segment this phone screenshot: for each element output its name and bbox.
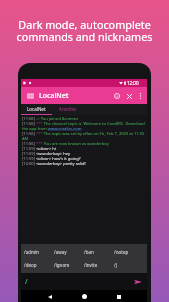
staticText: /ignore xyxy=(54,262,70,268)
staticText: /ban xyxy=(84,249,94,255)
staticText: /away xyxy=(54,249,67,255)
staticText: Anonbis xyxy=(59,106,77,112)
button[interactable]: Recent apps xyxy=(112,290,125,302)
staticText: /admin xyxy=(24,249,40,255)
staticText: Dark mode, autocomplete commands and nic… xyxy=(0,17,169,44)
staticText: /invite xyxy=(84,262,98,268)
button[interactable]: /deop xyxy=(24,258,54,271)
button[interactable]: /notop xyxy=(114,246,144,258)
button[interactable]: Home xyxy=(78,290,91,302)
staticText: LocalNet xyxy=(27,106,46,112)
button[interactable]: /invite xyxy=(84,258,114,271)
staticText: [11:56] -> You joined #comms [11:56] ***… xyxy=(22,116,147,166)
button[interactable]: Back xyxy=(43,290,56,302)
button[interactable]: /ignore xyxy=(54,258,84,271)
button[interactable]: More options xyxy=(135,90,146,101)
staticText: /notop xyxy=(114,249,129,255)
staticText: LocalNet xyxy=(39,91,69,101)
staticText: /j xyxy=(114,262,117,268)
staticText: 12:00 xyxy=(127,80,139,86)
button[interactable]: LocalNet xyxy=(21,104,52,114)
button[interactable]: Send message xyxy=(132,276,144,288)
button[interactable]: /j xyxy=(114,258,144,271)
button[interactable]: /ban xyxy=(84,246,114,258)
button[interactable]: /admin xyxy=(24,246,54,258)
button[interactable]: Open navigation drawer xyxy=(25,90,36,101)
button[interactable]: Close channel xyxy=(123,90,135,102)
button[interactable]: Channel info xyxy=(111,90,123,102)
staticText: /deop xyxy=(24,262,37,268)
staticText: / xyxy=(25,277,28,287)
button[interactable]: /away xyxy=(54,246,84,258)
button[interactable]: Anonbis xyxy=(52,104,83,114)
